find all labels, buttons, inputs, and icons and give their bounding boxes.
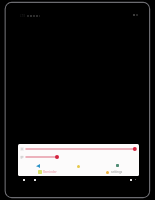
button[interactable]: Star: [77, 165, 80, 168]
staticText: Reminder: [43, 170, 57, 174]
button[interactable]: Navigate: [36, 164, 40, 168]
button[interactable]: settings: [106, 170, 123, 174]
staticText: settings: [111, 170, 123, 174]
staticText: LTE: [20, 14, 26, 18]
button[interactable]: Reminder: [38, 170, 57, 174]
button[interactable]: Brightness: [18, 144, 139, 176]
button[interactable]: Volume: [20, 154, 137, 160]
button[interactable]: Messages: [116, 164, 119, 167]
button[interactable]: Brightness: [20, 146, 137, 152]
